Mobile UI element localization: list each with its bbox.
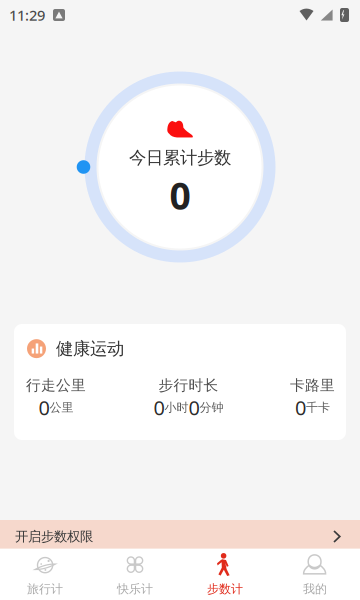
button[interactable]: 开启步数权限 [0, 520, 360, 553]
staticText: 开启步数权限 [15, 528, 93, 545]
staticText: 0 [169, 170, 190, 220]
staticText: 快乐计 [117, 582, 153, 596]
button[interactable]: 快乐计 [90, 553, 180, 600]
staticText: 我的 [303, 582, 327, 596]
button[interactable]: 步数计 [180, 553, 270, 600]
staticText: 0 [38, 394, 49, 421]
staticText: 千卡 [306, 400, 330, 415]
staticText: 步行时长 [158, 376, 218, 394]
staticText: 卡路里 [290, 376, 335, 394]
staticText: 步数计 [207, 582, 243, 596]
staticText: 健康运动 [56, 338, 124, 359]
staticText: 行走公里 [26, 376, 86, 394]
button[interactable]: 我的 [270, 553, 360, 600]
staticText: 11:29 [9, 5, 45, 25]
staticText: 0 [295, 394, 306, 421]
staticText: 分钟 [199, 400, 223, 415]
staticText: 0 [153, 394, 164, 421]
button[interactable]: 旅行计 [0, 553, 90, 600]
staticText: 今日累计步数 [129, 147, 231, 168]
staticText: 0 [188, 394, 199, 421]
staticText: 小时 [164, 400, 188, 415]
staticText: 公里 [49, 400, 73, 415]
staticText: 旅行计 [27, 582, 63, 596]
